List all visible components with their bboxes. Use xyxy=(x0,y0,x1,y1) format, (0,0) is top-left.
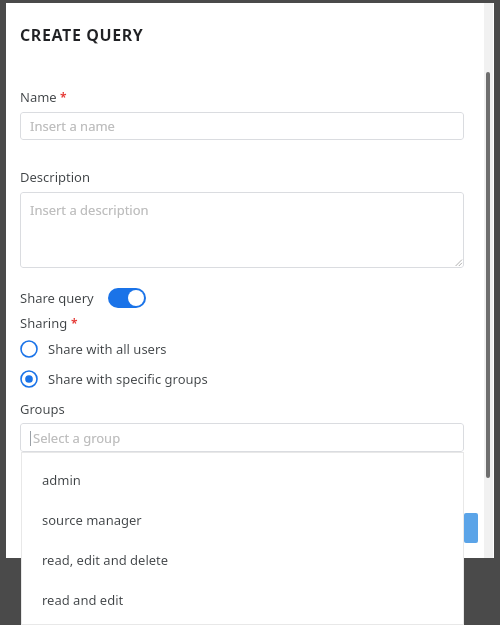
staticText: Select a group xyxy=(33,429,121,447)
staticText: Sharing xyxy=(20,314,68,332)
staticText: read and edit xyxy=(42,591,124,609)
staticText: read, edit and delete xyxy=(42,551,169,569)
staticText: Description xyxy=(20,168,90,186)
staticText: Share query xyxy=(20,289,94,307)
button[interactable]: read and edit xyxy=(21,580,464,620)
staticText: CREATE QUERY xyxy=(20,24,144,46)
staticText: Insert a name xyxy=(30,117,115,135)
button[interactable]: Select a group xyxy=(20,423,464,452)
button[interactable]: Save xyxy=(464,513,478,543)
staticText: Share with all users xyxy=(48,340,167,358)
button[interactable]: Insert a name xyxy=(20,112,464,140)
staticText: Insert a description xyxy=(30,201,149,219)
staticText: * xyxy=(71,315,78,331)
staticText: Groups xyxy=(20,400,65,418)
staticText: * xyxy=(60,89,67,105)
staticText: source manager xyxy=(42,511,142,529)
button[interactable]: read, edit and delete xyxy=(21,540,464,580)
button[interactable]: Share with specific groups xyxy=(20,370,208,388)
staticText: admin xyxy=(42,471,81,489)
button[interactable]: admin xyxy=(21,460,464,500)
button[interactable]: Insert a description xyxy=(20,192,464,268)
button[interactable]: Share with all users xyxy=(20,340,167,358)
button[interactable]: source manager xyxy=(21,500,464,540)
staticText: Name xyxy=(20,88,57,106)
staticText: Share with specific groups xyxy=(48,370,208,388)
button[interactable]: Share query toggle xyxy=(108,288,146,308)
